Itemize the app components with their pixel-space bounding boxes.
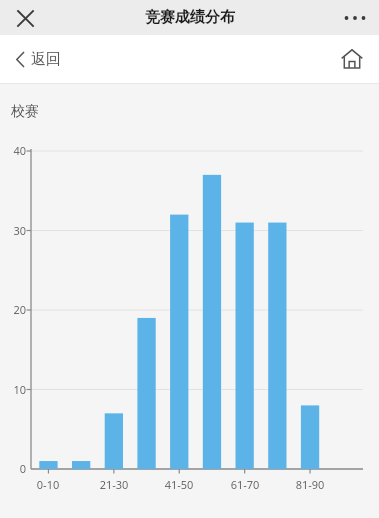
staticText: 41-50: [157, 477, 201, 492]
staticText: 30: [13, 223, 26, 238]
button[interactable]: Home: [337, 44, 367, 74]
staticText: 40: [13, 143, 26, 158]
staticText: 21-30: [92, 477, 136, 492]
button[interactable]: More options: [340, 3, 370, 33]
staticText: 0: [19, 461, 26, 476]
staticText: 61-70: [223, 477, 267, 492]
staticText: 返回: [31, 50, 61, 69]
staticText: 10: [13, 382, 26, 397]
staticText: 校赛: [11, 103, 39, 121]
button[interactable]: 返回: [13, 45, 64, 74]
staticText: 竞赛成绩分布: [145, 8, 235, 27]
staticText: 0-10: [26, 477, 70, 492]
staticText: 20: [13, 302, 26, 317]
staticText: 81-90: [288, 477, 332, 492]
button[interactable]: Close: [11, 4, 39, 32]
